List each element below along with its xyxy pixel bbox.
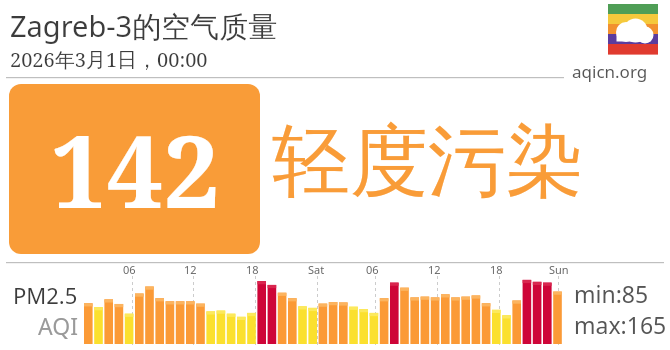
staticText: 18 xyxy=(246,262,259,277)
staticText: 142 xyxy=(50,101,220,237)
staticText: max:165 xyxy=(574,309,667,340)
staticText: Sun xyxy=(549,262,569,277)
staticText: AQI xyxy=(38,310,78,341)
staticText: 2026年3月1日，00:00 xyxy=(10,46,208,73)
staticText: PM2.5 xyxy=(13,280,78,310)
staticText: 轻度污染 xyxy=(272,113,584,211)
button[interactable]: 142 xyxy=(9,84,260,254)
staticText: 12 xyxy=(428,262,441,277)
staticText: 18 xyxy=(490,262,503,277)
staticText: min:85 xyxy=(574,278,649,309)
button[interactable]: aqicn.org logo xyxy=(608,4,658,54)
staticText: aqicn.org xyxy=(572,60,648,83)
staticText: 12 xyxy=(184,262,197,277)
staticText: Sat xyxy=(308,262,325,277)
staticText: 06 xyxy=(123,262,136,277)
staticText: 06 xyxy=(366,262,379,277)
staticText: Zagreb-3的空气质量 xyxy=(10,6,278,46)
